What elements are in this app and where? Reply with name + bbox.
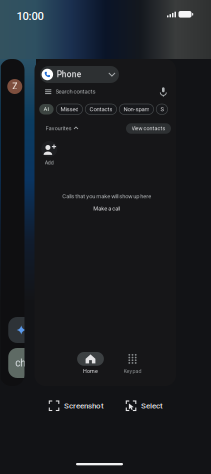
- staticText: Home: [83, 368, 98, 374]
- button[interactable]: Contacts: [85, 104, 117, 114]
- button[interactable]: Home: [69, 352, 111, 374]
- staticText: All: [43, 106, 49, 113]
- button[interactable]: Add: [36, 141, 62, 166]
- button[interactable]: Keypad: [111, 352, 153, 374]
- button[interactable]: View contacts: [126, 123, 171, 134]
- staticText: Non-spam: [123, 106, 149, 113]
- button[interactable]: Missed: [56, 104, 83, 114]
- staticText: Calls that you make will show up here: [62, 193, 151, 200]
- staticText: Search contacts: [56, 88, 96, 95]
- staticText: S: [160, 106, 163, 113]
- staticText: Phone: [57, 70, 81, 79]
- staticText: Z: [12, 81, 17, 92]
- button[interactable]: S: [156, 104, 168, 114]
- staticText: Missed: [60, 106, 78, 113]
- button[interactable]: Screenshot: [49, 401, 104, 410]
- button[interactable]: Search contacts: [34, 85, 176, 98]
- staticText: Add: [45, 159, 54, 166]
- button[interactable]: Select: [126, 401, 163, 410]
- button[interactable]: Phone: [40, 66, 119, 83]
- button[interactable]: Non-spam: [119, 104, 154, 114]
- button[interactable]: Make a call: [93, 205, 120, 212]
- staticText: Contacts: [89, 106, 112, 113]
- staticText: Make a call: [93, 205, 120, 212]
- staticText: View contacts: [131, 125, 165, 132]
- staticText: chat: [15, 357, 34, 369]
- staticText: Screenshot: [64, 401, 104, 410]
- staticText: Favourites: [46, 125, 72, 132]
- button[interactable]: All: [39, 104, 54, 114]
- staticText: 10:00: [16, 9, 43, 23]
- staticText: Select: [141, 401, 163, 410]
- staticText: Keypad: [123, 368, 141, 374]
